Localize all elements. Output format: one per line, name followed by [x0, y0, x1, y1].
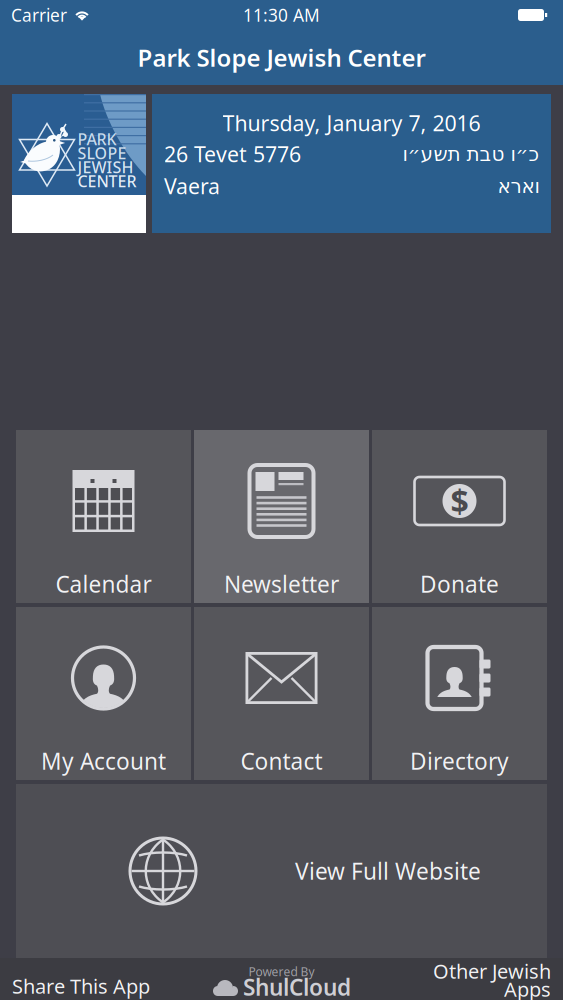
staticText: Carrier	[11, 3, 67, 26]
staticText: CENTER	[77, 170, 136, 192]
button[interactable]: Newsletter	[194, 430, 369, 603]
button[interactable]: $	[372, 430, 547, 603]
button[interactable]: Contact	[194, 607, 369, 780]
button[interactable]: My Account	[16, 607, 191, 780]
staticText: Thursday, January 7, 2016	[222, 109, 480, 137]
staticText: Newsletter	[224, 569, 339, 599]
staticText: Vaera	[164, 172, 220, 200]
staticText: $	[450, 480, 468, 522]
staticText: View Full Website	[295, 856, 481, 886]
staticText: 26 Tevet 5776	[164, 140, 301, 168]
staticText: Other Jewish	[433, 958, 551, 984]
staticText: JEWISH	[77, 156, 133, 178]
button[interactable]: View Full Website	[16, 784, 547, 958]
staticText: My Account	[41, 746, 166, 776]
staticText: PARK	[77, 128, 116, 150]
staticText: ShulCloud	[243, 972, 351, 1000]
staticText: 11:30 AM	[243, 3, 320, 26]
button[interactable]: Directory	[372, 607, 547, 780]
button[interactable]: Calendar	[16, 430, 191, 603]
staticText: Contact	[240, 746, 322, 776]
staticText: SLOPE	[77, 142, 126, 164]
staticText: Directory	[410, 746, 509, 776]
staticText: Share This App	[12, 973, 150, 999]
staticText: Powered By	[248, 963, 314, 979]
button[interactable]: Other Jewish	[433, 962, 563, 998]
staticText: כ״ו טבת תשע״ו	[402, 143, 539, 165]
staticText: Donate	[420, 569, 499, 599]
staticText: וארא	[497, 175, 539, 197]
button[interactable]: Share This App	[0, 975, 150, 997]
staticText: Apps	[504, 976, 551, 1000]
staticText: Calendar	[55, 569, 151, 599]
staticText: Park Slope Jewish Center	[137, 42, 425, 73]
